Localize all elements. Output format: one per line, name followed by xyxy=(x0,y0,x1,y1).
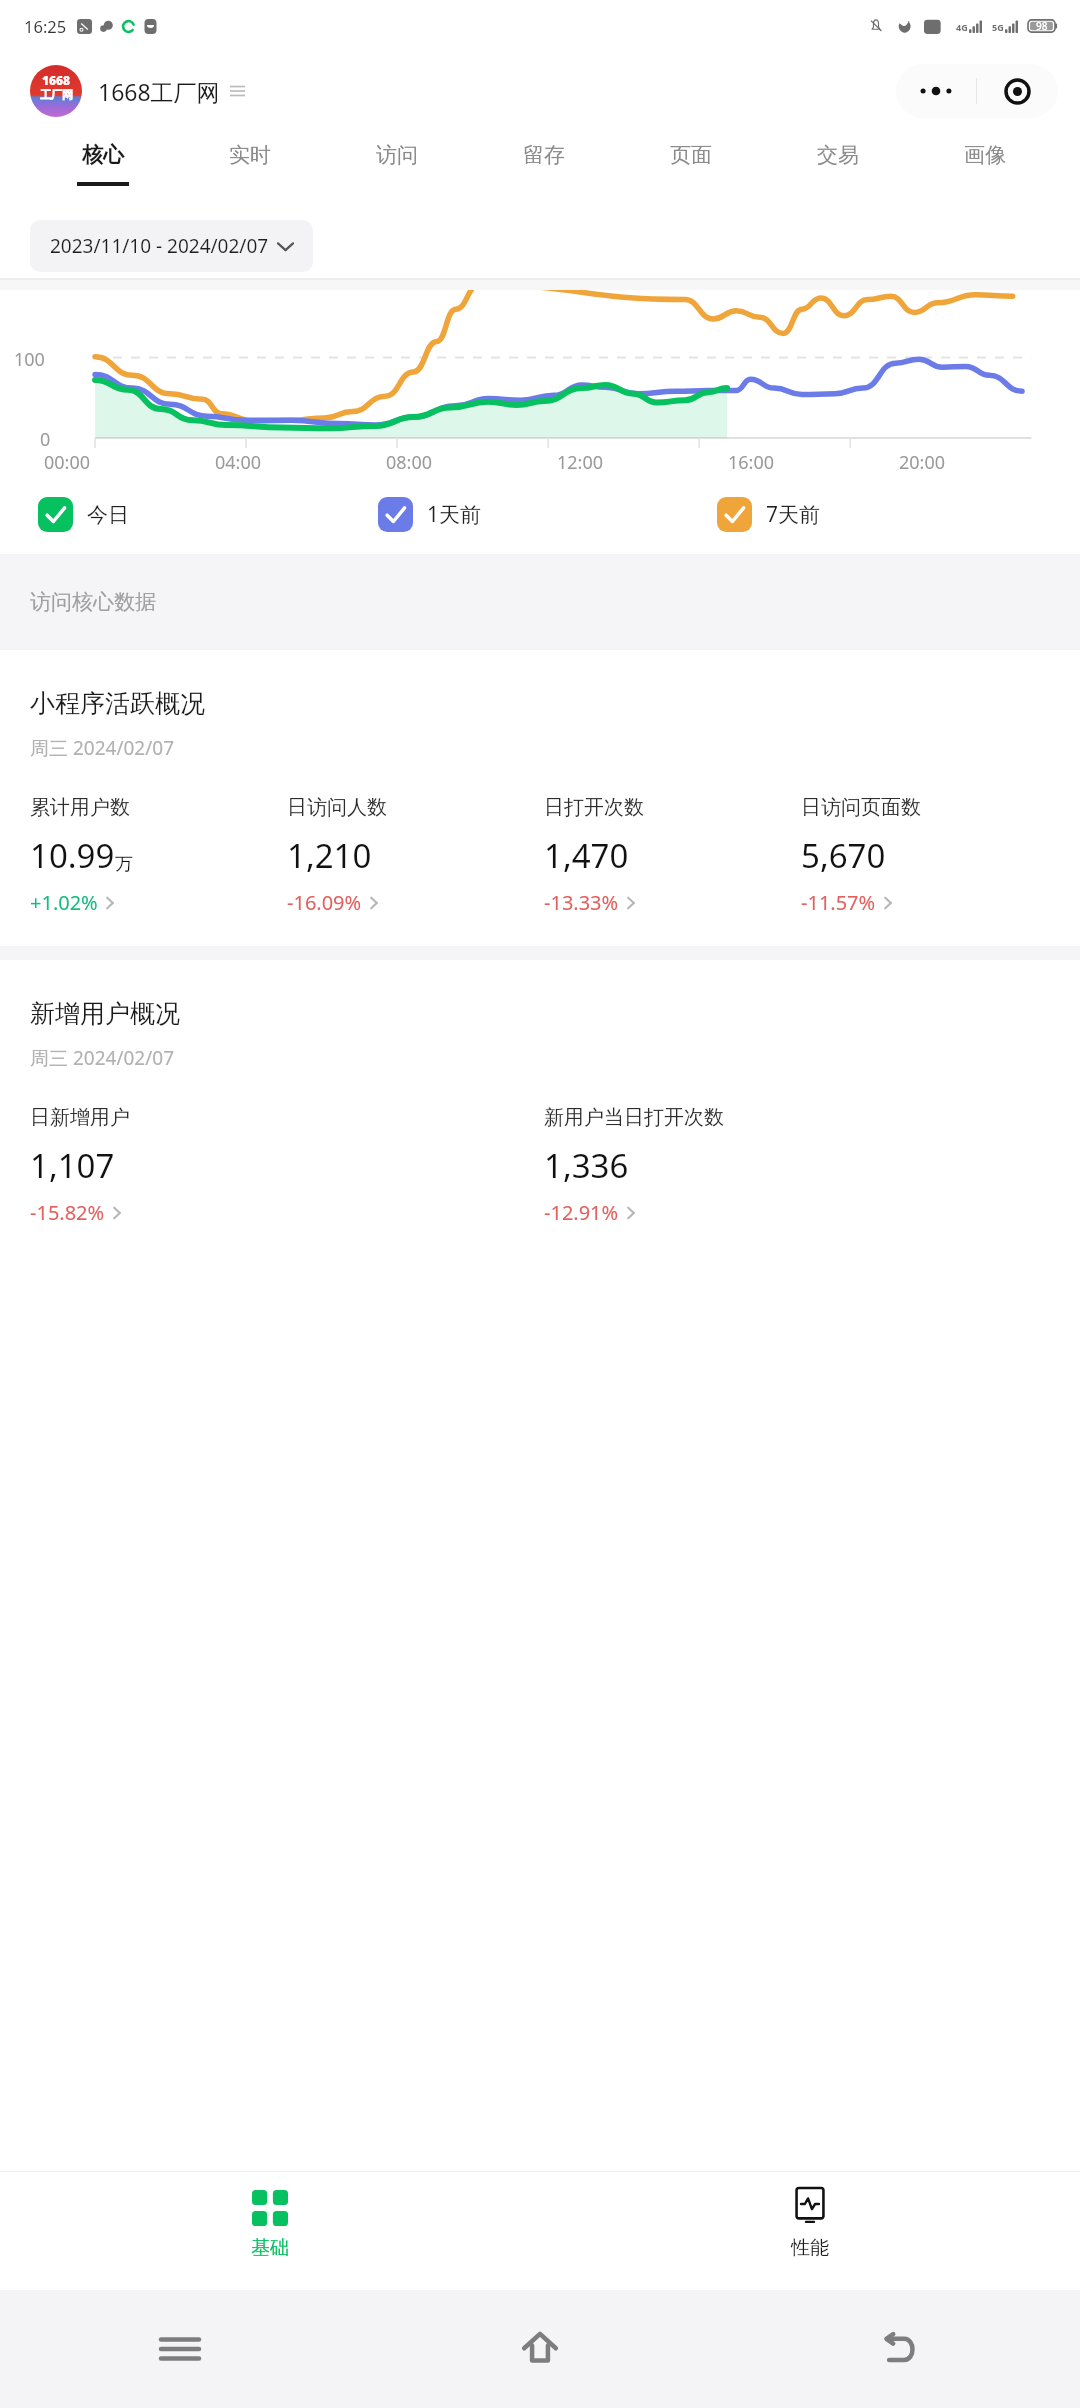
button[interactable]: 累计用户数 xyxy=(30,795,287,916)
button[interactable]: 7天前 xyxy=(717,497,1056,532)
staticText: 00:00 xyxy=(44,450,91,475)
staticText: 98 xyxy=(1036,19,1048,33)
button[interactable]: 今日 xyxy=(38,497,378,532)
staticText: 7天前 xyxy=(766,500,821,529)
button[interactable]: 基础 xyxy=(0,2172,540,2290)
staticText: 5,670 xyxy=(801,833,886,878)
button[interactable]: 页面 xyxy=(617,130,764,208)
staticText: 2023/11/10 - 2024/02/07 xyxy=(50,233,269,259)
staticText: 累计用户数 xyxy=(30,795,130,820)
staticText: 小程序活跃概况 xyxy=(30,688,205,719)
staticText: 1,210 xyxy=(287,833,372,878)
button[interactable]: Recents xyxy=(0,2290,360,2408)
staticText: 1,470 xyxy=(544,833,629,878)
staticText: 1,107 xyxy=(30,1143,115,1188)
button[interactable]: 访问 xyxy=(323,130,470,208)
staticText: 性能 xyxy=(791,2236,829,2260)
staticText: 1,336 xyxy=(544,1143,629,1188)
staticText: 日访问人数 xyxy=(287,795,387,820)
staticText: 4G xyxy=(956,21,968,33)
button[interactable]: Back xyxy=(720,2290,1080,2408)
button[interactable]: 留存 xyxy=(470,130,617,208)
staticText: 1668 xyxy=(42,72,71,88)
button[interactable]: Home xyxy=(360,2290,720,2408)
staticText: 16:00 xyxy=(728,450,775,475)
staticText: 新用户当日打开次数 xyxy=(544,1105,724,1130)
staticText: 核心 xyxy=(82,142,124,168)
staticText: -11.57% xyxy=(801,889,876,916)
button[interactable]: 2023/11/10 - 2024/02/07 xyxy=(30,220,313,272)
button[interactable]: 实时 xyxy=(176,130,323,208)
staticText: -13.33% xyxy=(544,889,619,916)
staticText: 交易 xyxy=(817,142,859,168)
staticText: 10.99 xyxy=(30,833,115,878)
staticText: 周三 2024/02/07 xyxy=(30,1045,175,1071)
staticText: -15.82% xyxy=(30,1199,105,1226)
staticText: 基础 xyxy=(251,2236,289,2260)
staticText: 工厂网 xyxy=(40,88,73,102)
staticText: 04:00 xyxy=(215,450,262,475)
staticText: 16:25 xyxy=(24,15,67,37)
staticText: -16.09% xyxy=(287,889,362,916)
staticText: +1.02% xyxy=(30,889,98,916)
staticText: 访问 xyxy=(376,142,418,168)
staticText: 实时 xyxy=(229,142,271,168)
staticText: 日新增用户 xyxy=(30,1105,130,1130)
button[interactable]: 性能 xyxy=(540,2172,1080,2290)
staticText: 20:00 xyxy=(899,450,946,475)
staticText: 页面 xyxy=(670,142,712,168)
button[interactable]: 核心 xyxy=(30,130,176,208)
staticText: 万 xyxy=(115,853,133,876)
staticText: 留存 xyxy=(523,142,565,168)
button[interactable]: 交易 xyxy=(764,130,911,208)
staticText: 100 xyxy=(14,347,45,372)
button[interactable]: 日新增用户 xyxy=(30,1105,544,1226)
staticText: 08:00 xyxy=(386,450,433,475)
staticText: 画像 xyxy=(964,142,1006,168)
button[interactable]: Mini program menu xyxy=(896,64,1058,118)
button[interactable]: 新用户当日打开次数 xyxy=(544,1105,1058,1226)
staticText: 0 xyxy=(40,427,51,452)
staticText: -12.91% xyxy=(544,1199,619,1226)
staticText: 1天前 xyxy=(427,500,482,529)
staticText: 1668工厂网 xyxy=(98,76,220,107)
button[interactable]: App logo xyxy=(30,65,82,117)
staticText: 日访问页面数 xyxy=(801,795,921,820)
button[interactable]: 1天前 xyxy=(378,497,717,532)
staticText: 周三 2024/02/07 xyxy=(30,735,175,761)
staticText: 日打开次数 xyxy=(544,795,644,820)
button[interactable]: 日访问人数 xyxy=(287,795,544,916)
staticText: 访问核心数据 xyxy=(30,589,156,615)
button[interactable]: 日打开次数 xyxy=(544,795,801,916)
button[interactable]: 画像 xyxy=(911,130,1058,208)
staticText: 5G xyxy=(992,21,1004,33)
staticText: 12:00 xyxy=(557,450,604,475)
staticText: 今日 xyxy=(87,502,129,528)
button[interactable]: 日访问页面数 xyxy=(801,795,1058,916)
staticText: 新增用户概况 xyxy=(30,998,180,1029)
